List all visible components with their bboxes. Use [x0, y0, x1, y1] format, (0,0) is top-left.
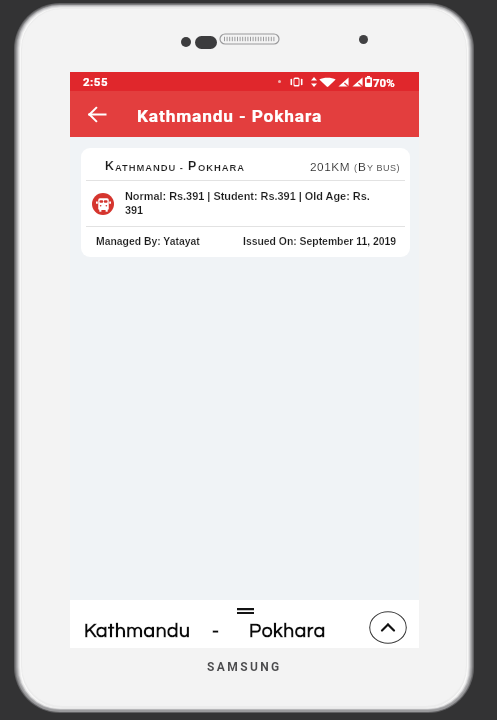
staticText: - — [212, 621, 220, 641]
staticText: P — [188, 159, 198, 173]
button[interactable]: Expand route details — [369, 611, 407, 644]
staticText: Kathmandu — [84, 621, 191, 641]
staticText: Pokhara — [249, 621, 326, 641]
staticText: OKHARA — [198, 162, 245, 173]
button[interactable]: K — [81, 148, 410, 257]
staticText: ( — [351, 163, 358, 173]
staticText: Normal: Rs.391 | Student: Rs.391 | Old A… — [125, 190, 377, 217]
staticText: B — [358, 160, 367, 173]
staticText: K — [105, 159, 115, 173]
button[interactable]: Back — [74, 91, 120, 137]
staticText: Managed By: Yatayat — [96, 236, 200, 248]
staticText: 2:55 — [83, 75, 109, 88]
staticText: 70% — [373, 76, 395, 89]
staticText: Issued On: September 11, 2019 — [243, 236, 397, 248]
staticText: Kathmandu - Pokhara — [137, 106, 323, 126]
staticText: 201KM — [310, 160, 351, 173]
staticText: ATHMANDU - — [115, 162, 188, 173]
staticText: Y BUS) — [367, 163, 401, 173]
staticText: SAMSUNG — [207, 660, 282, 674]
